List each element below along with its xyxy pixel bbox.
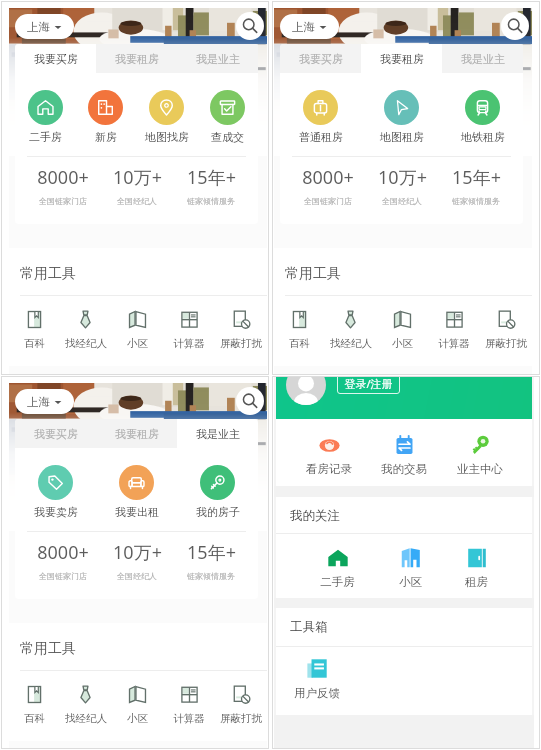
- button[interactable]: 我的交易: [381, 435, 427, 476]
- staticText: 全国经纪人: [117, 571, 157, 581]
- staticText: 看房记录: [306, 462, 352, 476]
- staticText: 找经纪人: [65, 712, 107, 725]
- staticText: 屏蔽打扰: [220, 337, 262, 350]
- staticText: 8000+: [37, 540, 89, 565]
- staticText: 链家倾情服务: [187, 196, 235, 206]
- button[interactable]: 百科: [9, 310, 60, 350]
- button[interactable]: 找经纪人: [60, 685, 111, 725]
- button[interactable]: 找经纪人: [60, 310, 111, 350]
- button[interactable]: 小区: [399, 547, 422, 589]
- staticText: 地铁租房: [461, 130, 505, 144]
- staticText: 我要买房: [34, 52, 78, 66]
- button[interactable]: 我要出租: [96, 465, 177, 519]
- staticText: 全国经纪人: [382, 196, 422, 206]
- staticText: 小区: [127, 337, 148, 350]
- staticText: 链家倾情服务: [187, 571, 235, 581]
- staticText: 我要租房: [115, 427, 159, 441]
- staticText: 二手房: [320, 575, 355, 589]
- staticText: 小区: [392, 337, 413, 350]
- staticText: 小区: [127, 712, 148, 725]
- staticText: 常用工具: [20, 640, 76, 658]
- button[interactable]: 计算器: [163, 310, 215, 350]
- button[interactable]: 我是业主: [177, 419, 258, 448]
- button[interactable]: Search: [236, 12, 264, 40]
- button[interactable]: 屏蔽打扰: [480, 310, 532, 350]
- button[interactable]: 看房记录: [306, 435, 352, 476]
- button[interactable]: 租房: [465, 547, 488, 589]
- staticText: 地图租房: [380, 130, 424, 144]
- button[interactable]: 上海: [15, 14, 74, 39]
- staticText: 我要买房: [34, 427, 78, 441]
- staticText: 我是业主: [461, 52, 505, 66]
- button[interactable]: 我的房子: [177, 465, 258, 519]
- button[interactable]: 业主中心: [457, 435, 503, 476]
- button[interactable]: 我要买房: [15, 44, 96, 73]
- staticText: 常用工具: [285, 265, 341, 283]
- button[interactable]: 屏蔽打扰: [215, 310, 267, 350]
- staticText: 我要卖房: [34, 505, 78, 519]
- staticText: 全国经纪人: [117, 196, 157, 206]
- staticText: 15年+: [187, 165, 236, 190]
- staticText: 常用工具: [20, 265, 76, 283]
- staticText: 我要租房: [380, 52, 424, 66]
- button[interactable]: Search: [236, 387, 264, 415]
- staticText: 屏蔽打扰: [485, 337, 527, 350]
- button[interactable]: 我是业主: [442, 44, 523, 73]
- staticText: 查成交: [211, 130, 244, 144]
- staticText: 登录/注册: [344, 377, 393, 391]
- button[interactable]: 屏蔽打扰: [215, 685, 267, 725]
- button[interactable]: Search: [501, 12, 529, 40]
- staticText: 我的房子: [196, 505, 240, 519]
- button[interactable]: 我要卖房: [15, 465, 96, 519]
- button[interactable]: 地铁租房: [442, 90, 523, 144]
- staticText: 8000+: [302, 165, 354, 190]
- staticText: 地图找房: [145, 130, 189, 144]
- staticText: 上海: [292, 20, 315, 34]
- staticText: 全国链家门店: [39, 571, 87, 581]
- staticText: 找经纪人: [65, 337, 107, 350]
- staticText: 我要买房: [299, 52, 343, 66]
- staticText: 百科: [24, 712, 45, 725]
- button[interactable]: 百科: [274, 310, 325, 350]
- button[interactable]: 我要租房: [361, 44, 442, 73]
- button[interactable]: 我要租房: [96, 419, 177, 448]
- staticText: 用户反馈: [294, 686, 340, 700]
- button[interactable]: 地图租房: [361, 90, 442, 144]
- button[interactable]: 找经纪人: [325, 310, 376, 350]
- button[interactable]: 普通租房: [280, 90, 361, 144]
- staticText: 计算器: [173, 712, 205, 725]
- staticText: 小区: [399, 575, 422, 589]
- staticText: 全国链家门店: [304, 196, 352, 206]
- button[interactable]: 我要买房: [280, 44, 361, 73]
- button[interactable]: 登录/注册: [337, 377, 400, 394]
- staticText: 业主中心: [457, 462, 503, 476]
- button[interactable]: 计算器: [428, 310, 480, 350]
- staticText: 百科: [289, 337, 310, 350]
- button[interactable]: 我要租房: [96, 44, 177, 73]
- button[interactable]: 用户反馈: [294, 657, 340, 700]
- button[interactable]: 小区: [111, 310, 163, 350]
- button[interactable]: 二手房: [15, 90, 75, 144]
- staticText: 计算器: [173, 337, 205, 350]
- button[interactable]: 小区: [376, 310, 428, 350]
- button[interactable]: 新房: [75, 90, 136, 144]
- button[interactable]: 计算器: [163, 685, 215, 725]
- staticText: 10万+: [113, 540, 162, 565]
- staticText: 上海: [27, 395, 50, 409]
- staticText: 15年+: [187, 540, 236, 565]
- button[interactable]: 百科: [9, 685, 60, 725]
- staticText: 15年+: [452, 165, 501, 190]
- button[interactable]: 上海: [280, 14, 339, 39]
- button[interactable]: 我是业主: [177, 44, 258, 73]
- staticText: 计算器: [438, 337, 470, 350]
- staticText: 二手房: [29, 130, 62, 144]
- staticText: 10万+: [113, 165, 162, 190]
- button[interactable]: 上海: [15, 389, 74, 414]
- staticText: 全国链家门店: [39, 196, 87, 206]
- button[interactable]: 小区: [111, 685, 163, 725]
- button[interactable]: 二手房: [320, 547, 355, 589]
- staticText: 我的关注: [290, 508, 340, 524]
- button[interactable]: 地图找房: [136, 90, 197, 144]
- button[interactable]: 查成交: [197, 90, 258, 144]
- button[interactable]: 我要买房: [15, 419, 96, 448]
